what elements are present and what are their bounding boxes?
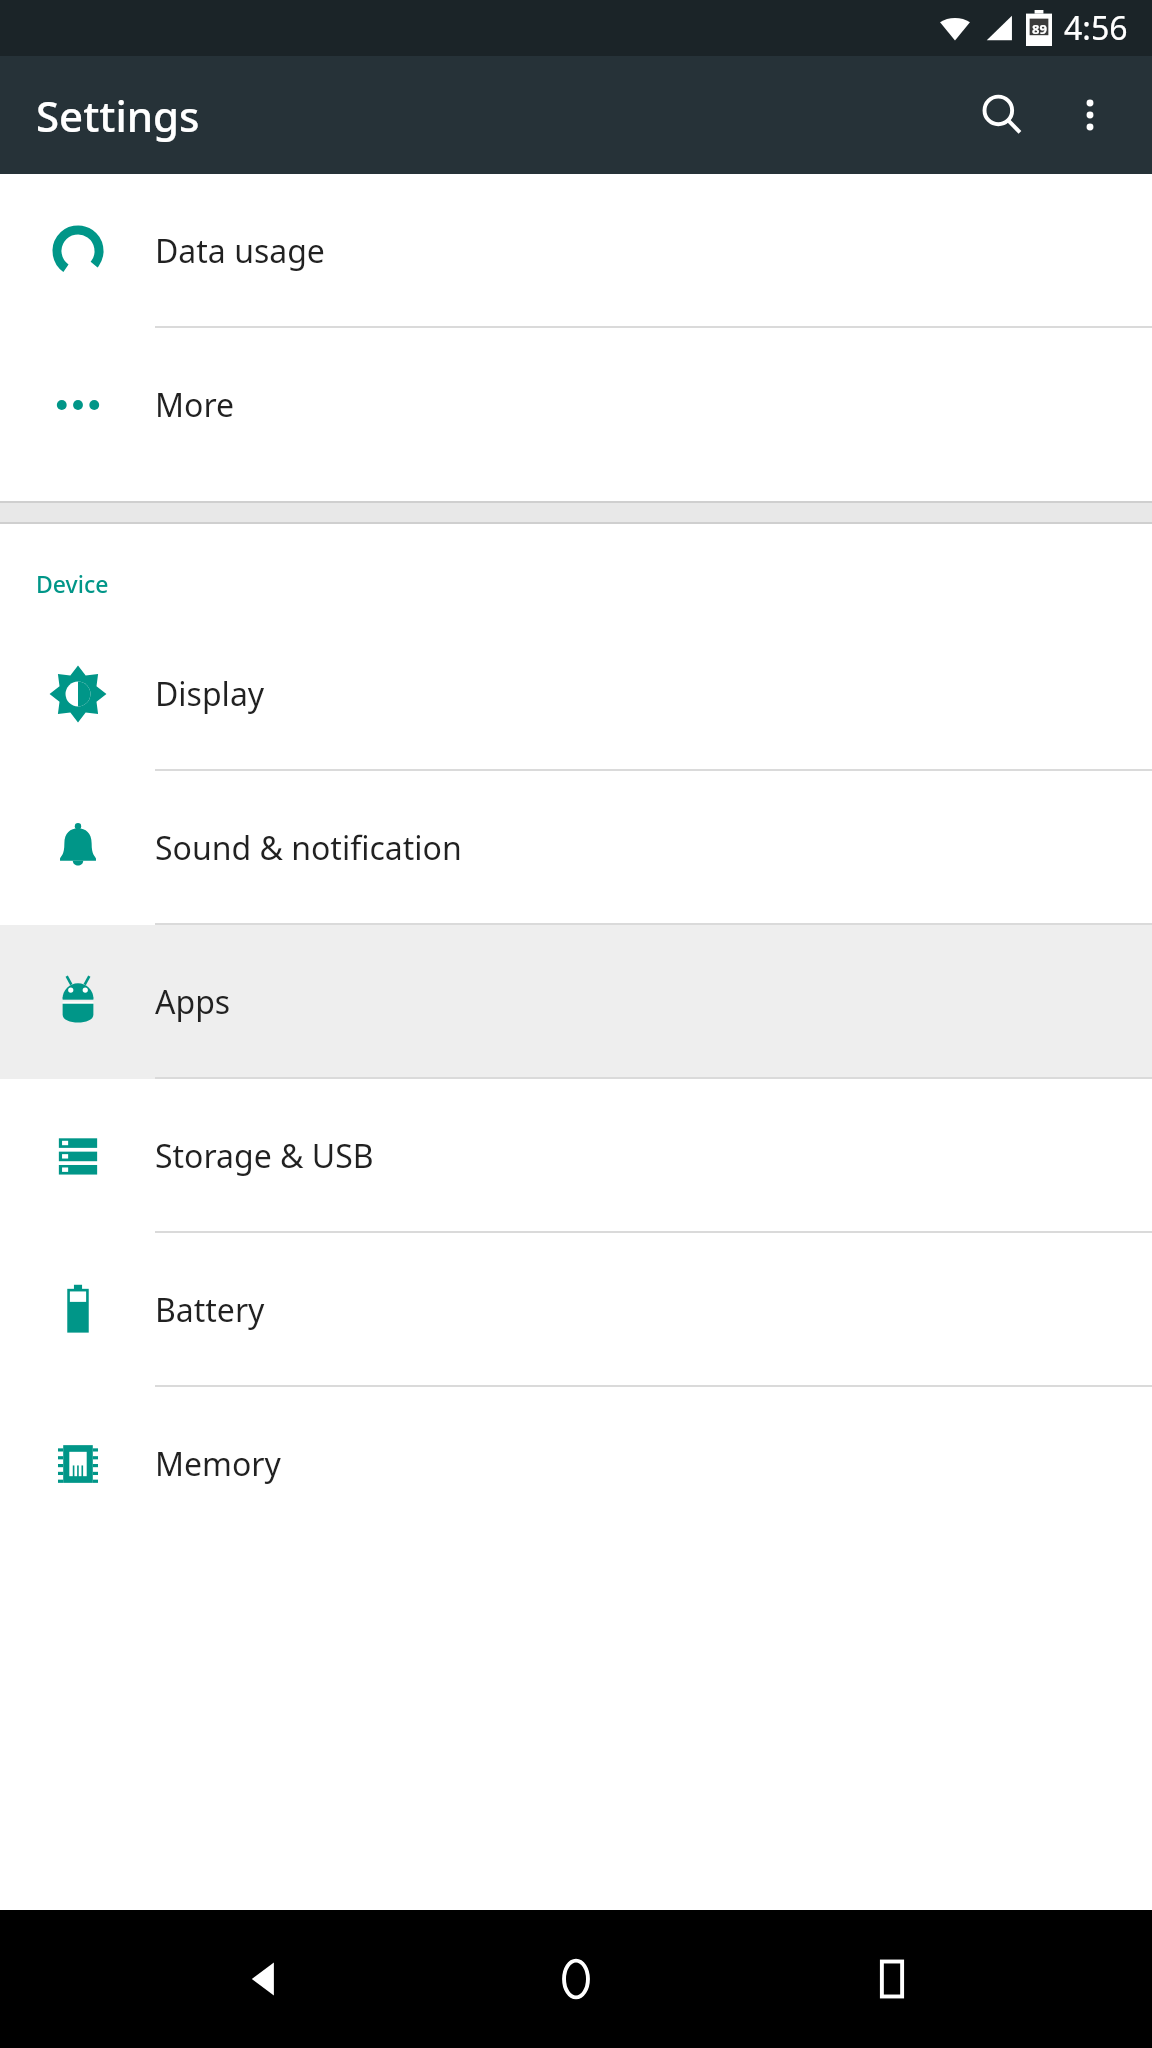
staticText: 89 (1032, 20, 1047, 38)
staticText: Data usage (155, 229, 325, 273)
staticText: Battery (155, 1288, 265, 1332)
button[interactable]: Sound & notification (0, 771, 1152, 925)
button[interactable]: Display (0, 617, 1152, 771)
staticText: Storage & USB (155, 1134, 374, 1178)
button[interactable]: Memory (0, 1387, 1152, 1541)
staticText: Sound & notification (155, 826, 462, 870)
staticText: More (155, 383, 235, 427)
staticText: Memory (155, 1442, 281, 1486)
staticText: Device (36, 568, 109, 599)
button[interactable]: More (0, 328, 1152, 482)
staticText: Settings (36, 87, 200, 144)
button[interactable]: Search (958, 71, 1046, 159)
button[interactable]: More options (1046, 71, 1134, 159)
staticText: 4:56 (1064, 6, 1128, 50)
staticText: Display (155, 672, 265, 716)
button[interactable]: Recent apps (837, 1924, 947, 2034)
button[interactable]: Battery (0, 1233, 1152, 1387)
staticText: Apps (155, 980, 231, 1024)
button[interactable]: Apps (0, 925, 1152, 1079)
button[interactable]: Data usage (0, 174, 1152, 328)
button[interactable]: Home (521, 1924, 631, 2034)
button[interactable]: Storage & USB (0, 1079, 1152, 1233)
button[interactable]: Back (206, 1924, 316, 2034)
